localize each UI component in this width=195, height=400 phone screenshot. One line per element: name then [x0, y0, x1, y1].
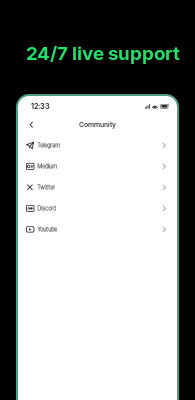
button[interactable]: Discord	[17, 198, 178, 219]
staticText: 24/7 live support	[26, 42, 180, 65]
staticText: Youtube	[37, 226, 57, 233]
button[interactable]: Youtube	[17, 219, 178, 240]
staticText: Telegram	[37, 142, 60, 149]
button[interactable]: Medium	[17, 156, 178, 177]
button[interactable]: Back	[25, 118, 38, 131]
staticText: Discord	[37, 205, 56, 212]
staticText: 12:33	[31, 102, 50, 111]
staticText: Community	[79, 120, 116, 129]
button[interactable]: Twitter	[17, 177, 178, 198]
button[interactable]: Telegram	[17, 135, 178, 156]
staticText: Twitter	[37, 184, 55, 191]
staticText: Medium	[37, 163, 57, 170]
